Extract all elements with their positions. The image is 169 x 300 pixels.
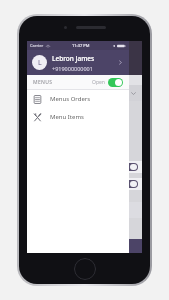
button[interactable]: Home bbox=[74, 258, 96, 280]
staticText: Open bbox=[92, 79, 105, 86]
staticText: ◂ bbox=[113, 43, 116, 48]
staticText: 11:37 PM bbox=[72, 43, 90, 48]
button[interactable]: Menu Items bbox=[27, 108, 129, 126]
button[interactable]: Open toggle bbox=[108, 78, 123, 87]
staticText: MENUS bbox=[33, 79, 53, 86]
staticText: Menus Orders bbox=[50, 95, 91, 103]
staticText: Menu Items bbox=[50, 113, 84, 121]
other: Open profile bbox=[117, 59, 124, 66]
staticText: Lebron James bbox=[52, 54, 95, 63]
button[interactable]: Toggle bbox=[124, 163, 138, 171]
staticText: L bbox=[38, 58, 42, 68]
staticText: +919000000001 bbox=[52, 65, 93, 72]
staticText: Carrier bbox=[30, 43, 44, 48]
button[interactable]: Toggle bbox=[124, 180, 138, 188]
button[interactable]: Menus Orders bbox=[27, 90, 129, 108]
button[interactable]: L bbox=[27, 50, 129, 75]
